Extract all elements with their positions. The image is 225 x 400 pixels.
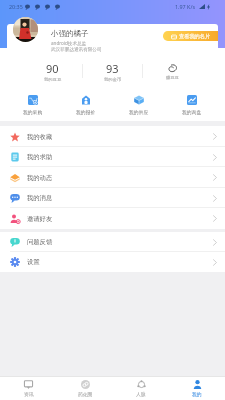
button[interactable]: 我的消息 xyxy=(0,188,225,208)
staticText: 问题反馈 xyxy=(27,238,53,246)
button[interactable]: 90 xyxy=(23,59,82,83)
staticText: 我的报价 xyxy=(76,109,96,115)
staticText: 我的求助 xyxy=(27,153,53,161)
button[interactable]: 资讯 xyxy=(0,377,57,400)
button[interactable]: 93 xyxy=(83,59,142,83)
staticText: 1.97 K/s xyxy=(175,3,196,10)
staticText: 90 xyxy=(46,61,59,76)
staticText: 我的供应 xyxy=(129,109,149,115)
staticText: android技术总监 xyxy=(51,40,87,46)
button[interactable]: 我的 xyxy=(169,377,225,400)
staticText: 我的动态 xyxy=(27,174,53,182)
staticText: 我的金币 xyxy=(104,77,122,82)
button[interactable]: 邀请好友 xyxy=(0,208,225,229)
staticText: 我的收藏 xyxy=(27,133,53,141)
button[interactable]: 我的供应 xyxy=(112,95,165,121)
button[interactable]: 人脉 xyxy=(113,377,169,400)
staticText: 我的询盘 xyxy=(182,109,202,115)
button[interactable]: 我的采购 xyxy=(7,95,59,121)
staticText: 邀请好友 xyxy=(27,215,53,223)
button[interactable]: 我的动态 xyxy=(0,167,225,188)
staticText: 赚豆豆 xyxy=(166,75,179,80)
button[interactable]: 查看我的名片 xyxy=(163,31,218,41)
staticText: 武汉菲鹏达通讯有限公司 xyxy=(51,47,102,53)
staticText: 93 xyxy=(106,61,119,76)
button[interactable]: 我的收藏 xyxy=(0,126,225,147)
staticText: 设置 xyxy=(27,258,40,266)
button[interactable]: 头像 xyxy=(13,17,38,42)
staticText: 我的采购 xyxy=(23,109,43,115)
button[interactable]: 药化圈 xyxy=(57,377,113,400)
staticText: 查看我的名片 xyxy=(179,33,211,40)
button[interactable]: 我的求助 xyxy=(0,147,225,167)
staticText: 人脉 xyxy=(136,391,146,397)
staticText: 小强的橘子 xyxy=(51,29,89,38)
button[interactable]: 我的报价 xyxy=(59,95,112,121)
staticText: 资讯 xyxy=(24,391,34,397)
button[interactable]: 问题反馈 xyxy=(0,232,225,252)
button[interactable]: 赚豆豆 xyxy=(143,59,202,83)
staticText: 我的消息 xyxy=(27,194,53,202)
staticText: 20:35 xyxy=(9,3,23,10)
staticText: 药化圈 xyxy=(78,391,93,397)
staticText: 我的 xyxy=(192,391,202,397)
button[interactable]: 我的询盘 xyxy=(165,95,218,121)
staticText: 我的豆豆 xyxy=(44,77,62,82)
button[interactable]: 设置 xyxy=(0,252,225,272)
